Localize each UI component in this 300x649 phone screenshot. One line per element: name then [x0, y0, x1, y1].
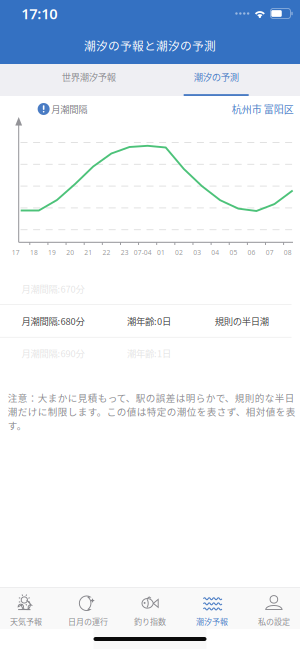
staticText: 潮年齢:1日: [127, 346, 171, 360]
staticText: 17:10: [21, 4, 57, 23]
button[interactable]: 世界潮汐予報: [25, 64, 152, 96]
staticText: 日月の運行: [68, 615, 108, 627]
staticText: 06: [247, 248, 255, 257]
staticText: 18: [30, 248, 38, 257]
staticText: 月潮間隔:670分: [21, 282, 84, 295]
staticText: 世界潮汐予報: [62, 70, 116, 83]
button[interactable]: 釣り指数: [119, 594, 181, 627]
staticText: 月潮間隔:690分: [21, 346, 84, 360]
staticText: 19: [48, 248, 56, 257]
staticText: 規則の半日潮: [215, 314, 269, 328]
staticText: 注意：大まかに見積もって、駅の誤差は明らかで、規則的な半日潮だけに制限します。こ…: [8, 391, 296, 432]
staticText: 21: [84, 248, 92, 257]
staticText: 私の設定: [258, 615, 290, 627]
staticText: 23: [121, 248, 129, 257]
staticText: 月潮間隔: [51, 102, 87, 116]
staticText: 月潮間隔:680分: [21, 314, 84, 328]
staticText: 天気予報: [10, 615, 42, 627]
button[interactable]: 潮汐の予測: [152, 64, 280, 96]
staticText: 釣り指数: [134, 615, 166, 627]
staticText: 潮年齢:0日: [127, 314, 171, 328]
button[interactable]: 日月の運行: [57, 594, 119, 627]
staticText: 08: [284, 248, 292, 257]
staticText: 07-04: [134, 248, 152, 257]
button[interactable]: 私の設定: [243, 594, 300, 627]
staticText: 潮汐予報: [196, 615, 228, 627]
staticText: 02: [175, 248, 183, 257]
staticText: 潮汐の予報と潮汐の予測: [84, 37, 216, 54]
staticText: 20: [66, 248, 74, 257]
staticText: 22: [102, 248, 110, 257]
button[interactable]: 天気予報: [0, 594, 57, 627]
staticText: 03: [193, 248, 201, 257]
staticText: 杭州市 富阳区: [232, 102, 294, 116]
staticText: 05: [229, 248, 237, 257]
staticText: 01: [157, 248, 165, 257]
staticText: 07: [266, 248, 274, 257]
staticText: 17: [12, 248, 20, 257]
staticText: 04: [211, 248, 219, 257]
button[interactable]: 潮汐予報: [181, 594, 243, 627]
staticText: 潮汐の予測: [194, 70, 239, 83]
